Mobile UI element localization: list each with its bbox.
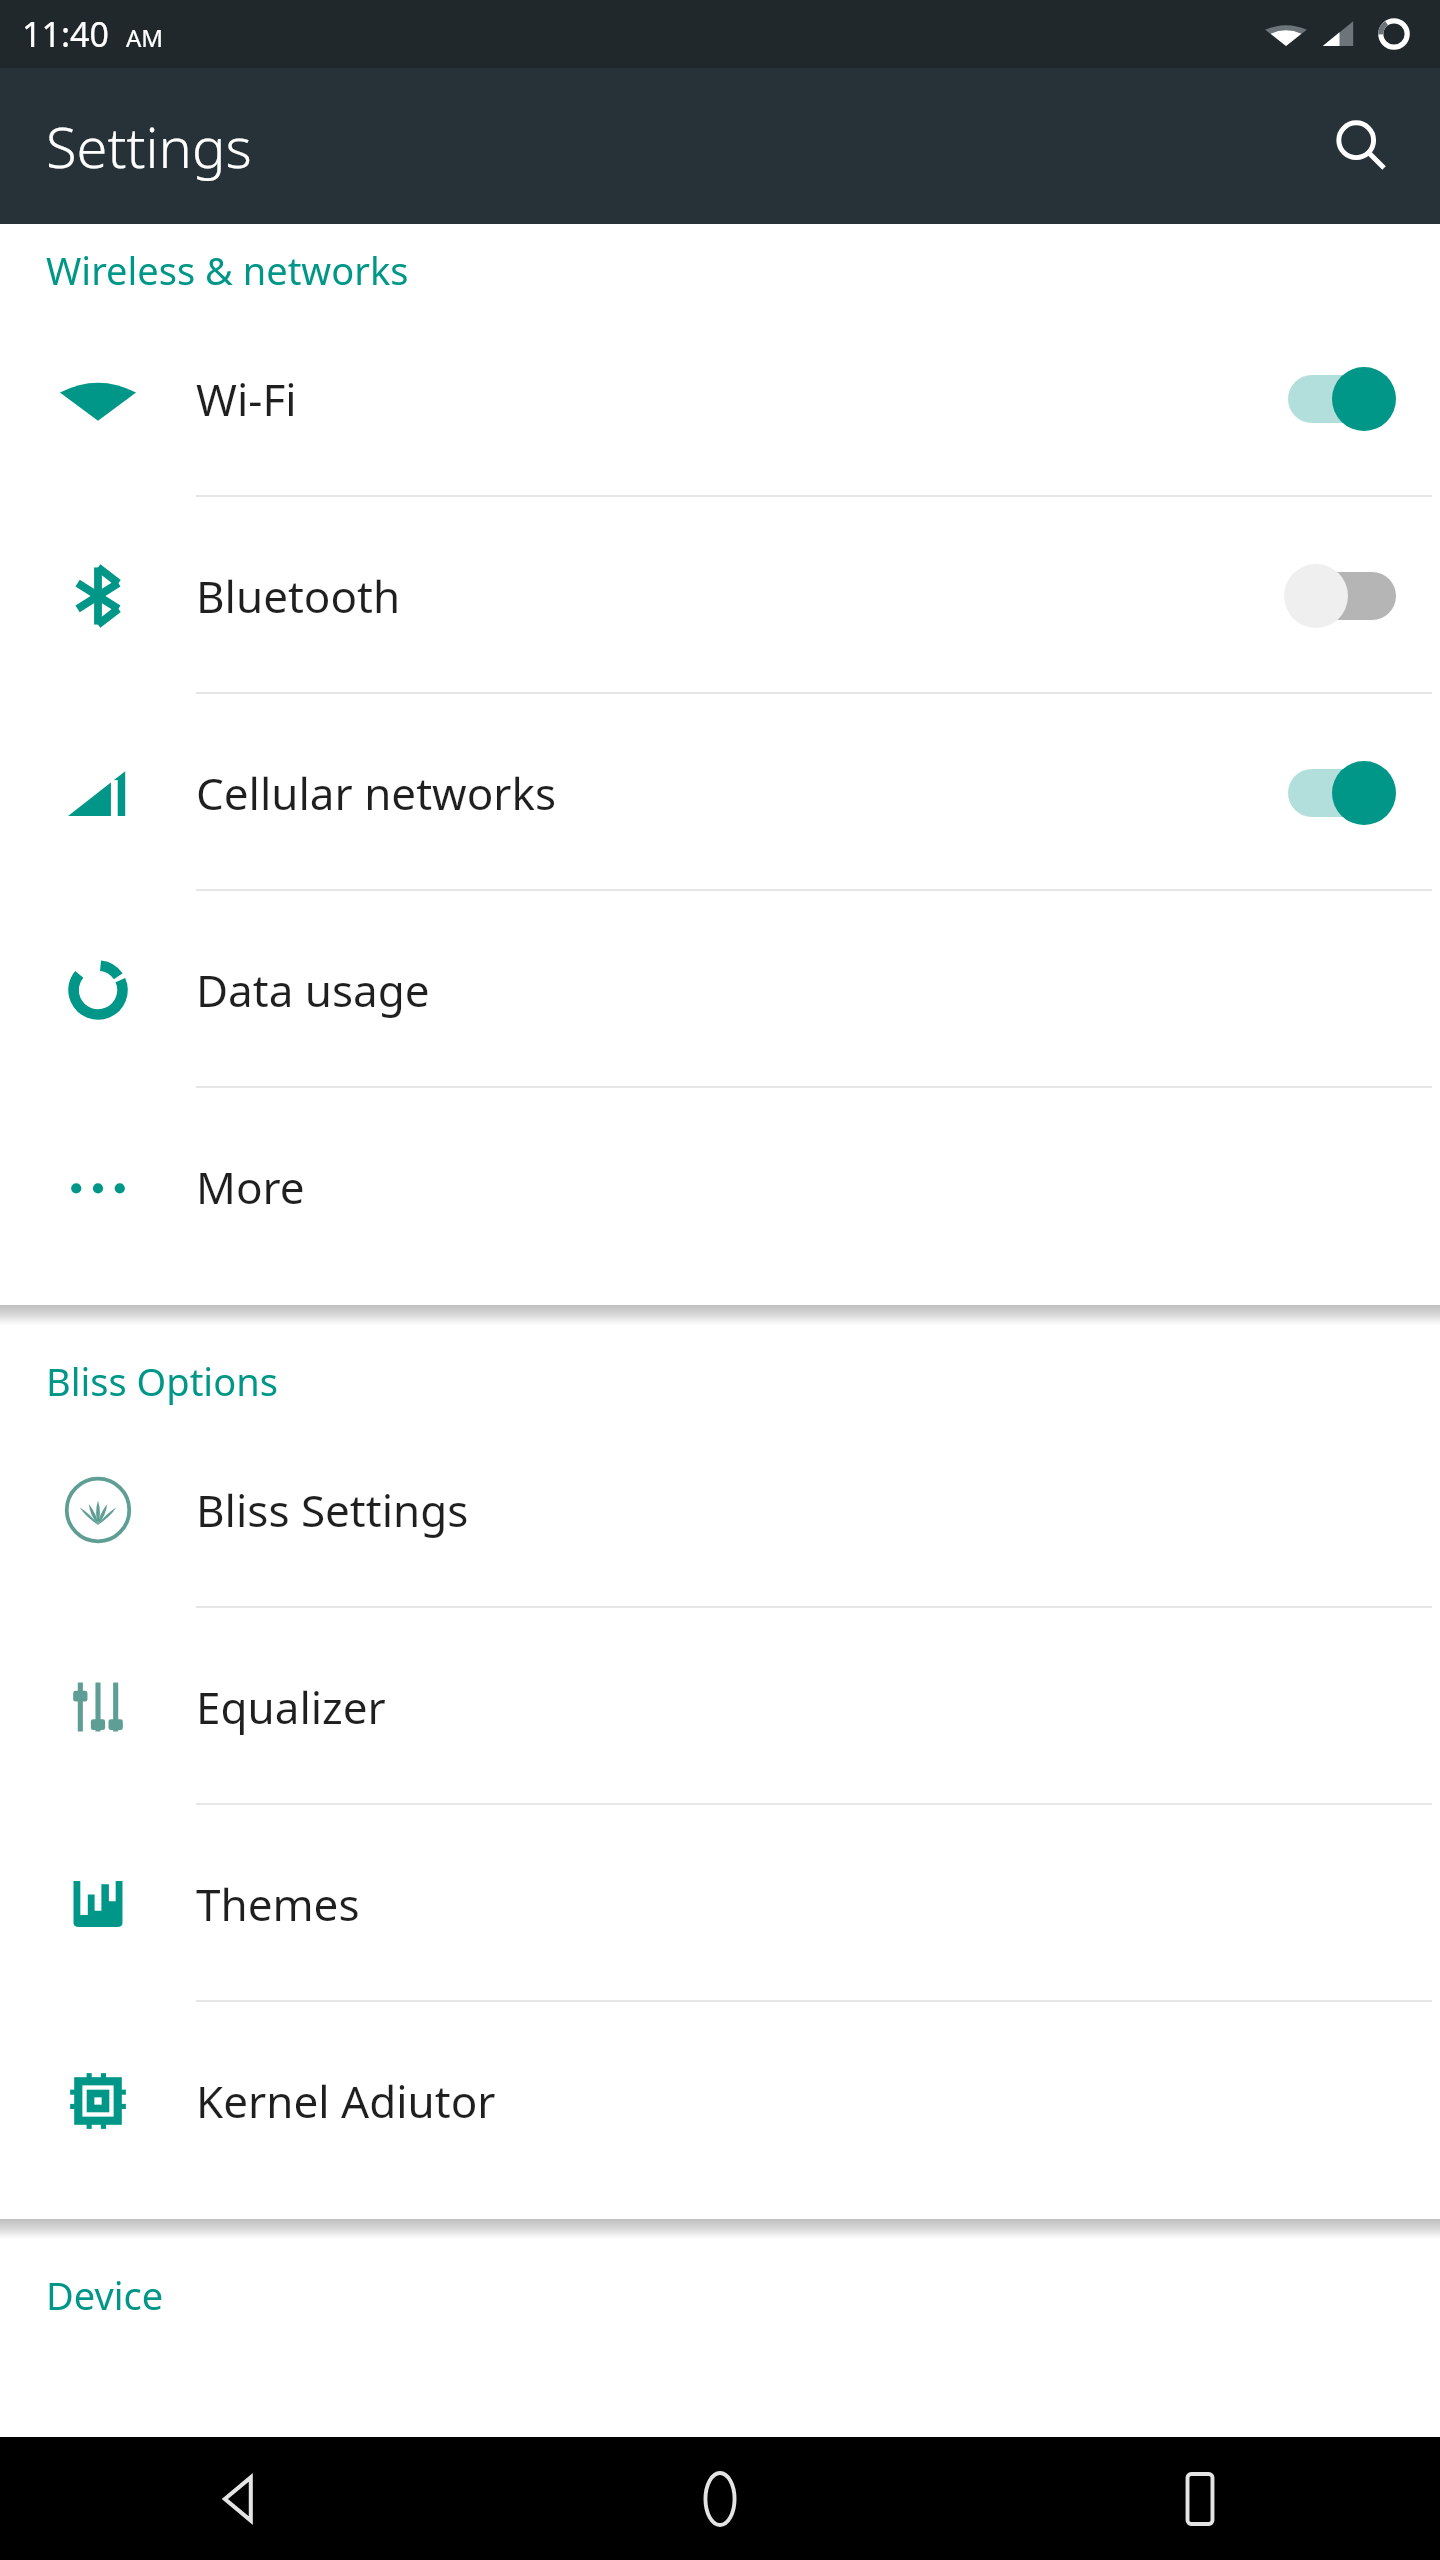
staticText: Wi-Fi <box>196 369 1284 429</box>
button[interactable]: Wi-Fi <box>0 300 1440 497</box>
staticText: Themes <box>196 1874 1440 1934</box>
button[interactable]: Bliss Settings <box>0 1411 1440 1608</box>
button[interactable]: Equalizer <box>0 1608 1440 1805</box>
button[interactable]: Cellular networks <box>0 694 1440 891</box>
button[interactable]: Toggle off <box>1284 559 1396 633</box>
staticText: More <box>196 1157 1440 1217</box>
staticText: Data usage <box>196 960 1440 1020</box>
button[interactable]: Data usage <box>0 891 1440 1088</box>
staticText: Settings <box>46 108 252 184</box>
staticText: Device <box>46 2269 164 2321</box>
staticText: AM <box>126 21 164 54</box>
staticText: Bliss Options <box>46 1355 278 1407</box>
button[interactable]: Bluetooth <box>0 497 1440 694</box>
button[interactable]: Recents <box>960 2437 1440 2560</box>
button[interactable]: Toggle on <box>1284 362 1396 436</box>
staticText: 11:40 <box>22 11 109 57</box>
button[interactable]: Toggle on <box>1284 756 1396 830</box>
staticText: Bliss Settings <box>196 1480 1440 1540</box>
staticText: Kernel Adiutor <box>196 2071 1440 2131</box>
button[interactable]: Home <box>480 2437 960 2560</box>
staticText: Equalizer <box>196 1677 1440 1737</box>
staticText: Wireless & networks <box>46 244 409 296</box>
staticText: Bluetooth <box>196 566 1284 626</box>
button[interactable]: Themes <box>0 1805 1440 2002</box>
button[interactable]: More <box>0 1088 1440 1285</box>
button[interactable]: Kernel Adiutor <box>0 2002 1440 2199</box>
button[interactable]: Back <box>0 2437 480 2560</box>
button[interactable]: Search <box>1310 94 1414 198</box>
staticText: Cellular networks <box>196 763 1284 823</box>
